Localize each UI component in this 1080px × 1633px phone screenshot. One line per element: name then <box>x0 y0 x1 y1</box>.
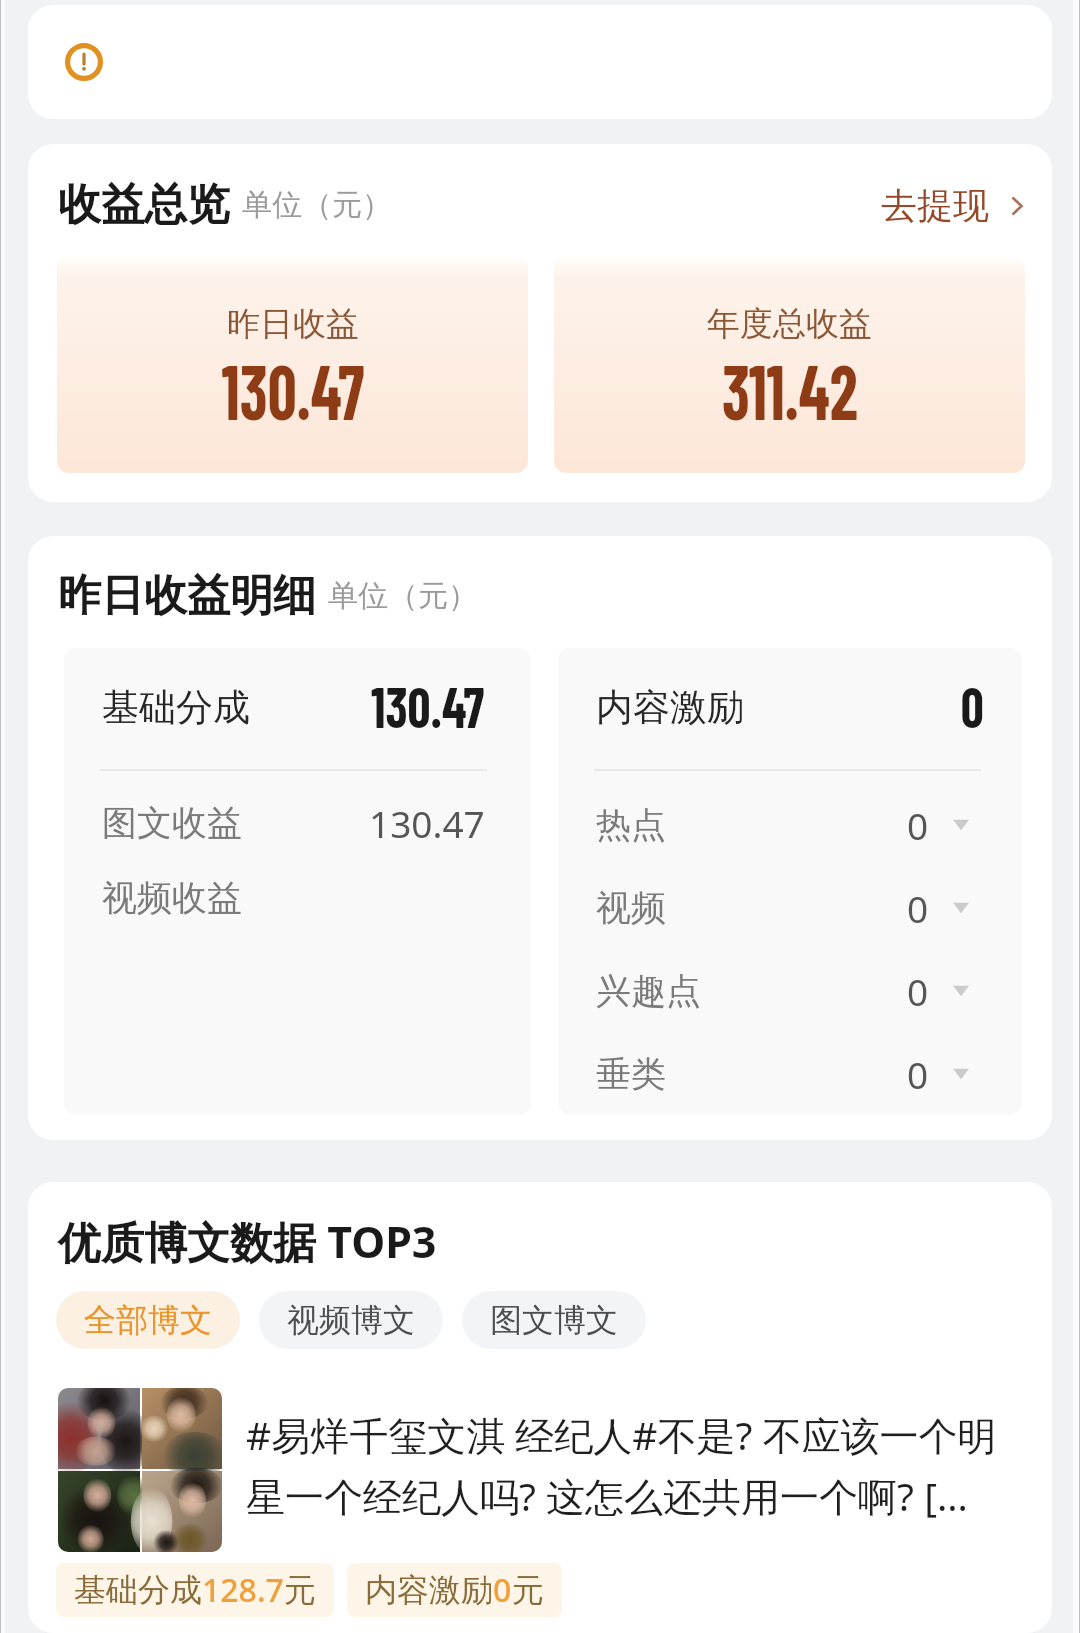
staticText: 0 <box>493 1568 512 1612</box>
staticText: 视频博文 <box>287 1300 415 1340</box>
staticText: 0 <box>907 883 929 933</box>
staticText: 内容激励 <box>596 684 744 731</box>
staticText: 130.47 <box>371 671 485 731</box>
button[interactable]: 年度总收益 <box>554 256 1025 473</box>
staticText: 元 <box>512 1570 544 1610</box>
staticText: 年度总收益 <box>707 303 872 345</box>
staticText: 热点 <box>596 803 666 847</box>
staticText: 视频收益 <box>102 876 242 920</box>
button[interactable]: 全部博文 <box>56 1291 240 1349</box>
staticText: 昨日收益 <box>227 303 359 345</box>
staticText: 图文收益 <box>102 801 242 845</box>
staticText: 内容激励 <box>365 1570 493 1610</box>
staticText: 311.42 <box>722 343 858 435</box>
staticText: 128.7 <box>202 1568 284 1612</box>
staticText: #易烊千玺文淇 经纪人#不是? 不应该一个明星一个经纪人吗? 这怎么还共用一个啊… <box>246 1408 1018 1523</box>
button[interactable]: 昨日收益 <box>57 256 528 473</box>
staticText: 0 <box>907 800 929 850</box>
button[interactable]: Notice <box>28 5 1052 119</box>
button[interactable]: 视频 <box>907 883 969 933</box>
staticText: 收益总览 <box>58 178 230 232</box>
button[interactable]: 热点 <box>907 800 969 850</box>
staticText: 优质博文数据 TOP3 <box>58 1212 437 1271</box>
button[interactable]: 基础分成 <box>56 1563 334 1617</box>
staticText: 130.47 <box>222 343 364 435</box>
staticText: 130.47 <box>369 798 485 848</box>
button[interactable]: 内容激励 <box>347 1563 562 1617</box>
staticText: 图文博文 <box>490 1300 618 1340</box>
staticText: 垂类 <box>596 1052 666 1096</box>
button[interactable]: 垂类 <box>907 1049 969 1099</box>
staticText: 元 <box>284 1570 316 1610</box>
button[interactable]: 视频博文 <box>259 1291 443 1349</box>
button[interactable]: 兴趣点 <box>907 966 969 1016</box>
staticText: 兴趣点 <box>596 969 701 1013</box>
staticText: 基础分成 <box>102 684 250 731</box>
staticText: 0 <box>907 966 929 1016</box>
staticText: 0 <box>907 1049 929 1099</box>
button[interactable]: 图文博文 <box>462 1291 646 1349</box>
staticText: 全部博文 <box>84 1300 212 1340</box>
other: Notice <box>65 43 103 81</box>
staticText: 单位（元） <box>242 186 392 224</box>
button[interactable]: 去提现 <box>881 183 1022 228</box>
staticText: 0 <box>961 671 984 731</box>
staticText: 视频 <box>596 886 666 930</box>
staticText: 单位（元） <box>328 577 478 615</box>
staticText: 去提现 <box>881 183 989 228</box>
staticText: 基础分成 <box>74 1570 202 1610</box>
button[interactable] <box>58 1388 222 1552</box>
staticText: 昨日收益明细 <box>58 569 316 623</box>
